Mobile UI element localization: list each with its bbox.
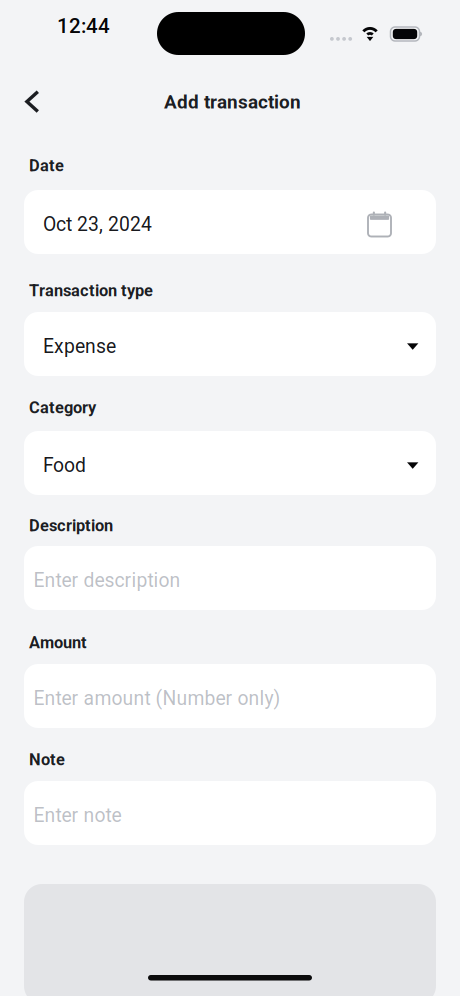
staticText: Category [29,398,96,417]
staticText: Transaction type [29,281,153,300]
staticText: Food [43,454,86,477]
staticText: Date [29,156,64,175]
staticText: Amount [29,633,87,652]
button[interactable]: Food [24,431,436,495]
staticText: Add transaction [164,91,301,113]
button[interactable]: Expense [24,312,436,376]
staticText: Oct 23, 2024 [43,213,152,236]
staticText: Enter note [33,804,121,827]
button[interactable]: Oct 23, 2024 [24,190,436,254]
button[interactable]: Enter description [24,546,436,610]
button[interactable]: Enter amount (Number only) [24,664,436,728]
button[interactable]: Add transaction [24,884,436,996]
staticText: Note [29,750,65,769]
staticText: 12:44 [57,14,110,38]
button[interactable]: Back [14,78,62,126]
staticText: Enter description [33,569,180,592]
button[interactable]: Enter note [24,781,436,845]
staticText: Enter amount (Number only) [33,687,280,710]
staticText: Expense [43,335,116,358]
staticText: Description [29,516,113,535]
